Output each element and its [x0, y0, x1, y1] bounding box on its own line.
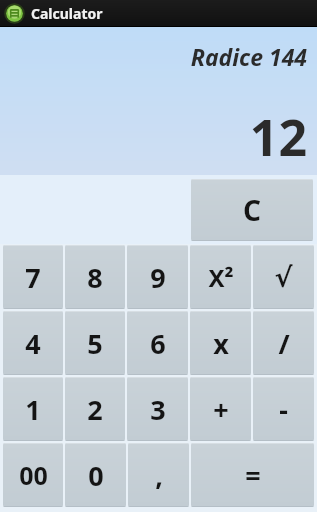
staticText: 8 [87, 259, 103, 296]
staticText: 1 [25, 391, 41, 428]
staticText: X² [208, 261, 234, 294]
button[interactable]: 9 [127, 245, 188, 309]
staticText: 3 [150, 391, 166, 428]
staticText: 2 [87, 391, 103, 428]
button[interactable]: Square root [253, 245, 314, 309]
button[interactable]: Square [190, 245, 251, 309]
staticText: + [213, 391, 229, 428]
button[interactable]: Plus [190, 377, 251, 441]
staticText: , [155, 457, 163, 494]
staticText: 5 [87, 325, 103, 362]
other: Calculator icon [5, 4, 24, 23]
staticText: 00 [19, 458, 48, 492]
staticText: 7 [25, 259, 41, 296]
button[interactable]: Minus [253, 377, 314, 441]
button[interactable]: 00 [3, 443, 63, 507]
staticText: √ [274, 262, 293, 293]
button[interactable]: 5 [65, 311, 125, 375]
button[interactable]: 2 [65, 377, 125, 441]
staticText: = [245, 457, 261, 494]
staticText: C [243, 191, 261, 229]
button[interactable]: Equals [191, 443, 314, 507]
button[interactable]: 7 [3, 245, 63, 309]
button[interactable]: 0 [65, 443, 126, 507]
button[interactable]: 6 [127, 311, 188, 375]
staticText: Radice 144 [190, 41, 307, 72]
button[interactable]: C [191, 179, 313, 241]
button[interactable]: 4 [3, 311, 63, 375]
staticText: / [278, 325, 290, 362]
staticText: - [279, 391, 288, 428]
button[interactable]: Divide [253, 311, 314, 375]
button[interactable]: 1 [3, 377, 63, 441]
staticText: 9 [150, 259, 166, 296]
staticText: 4 [25, 325, 41, 362]
staticText: Calculator [31, 4, 103, 23]
button[interactable]: 8 [65, 245, 125, 309]
staticText: 6 [150, 325, 166, 362]
staticText: 0 [88, 457, 104, 494]
staticText: x [213, 325, 229, 362]
staticText: 12 [249, 103, 307, 171]
button[interactable]: Multiply [190, 311, 251, 375]
button[interactable]: Decimal separator [128, 443, 189, 507]
button[interactable]: 3 [127, 377, 188, 441]
